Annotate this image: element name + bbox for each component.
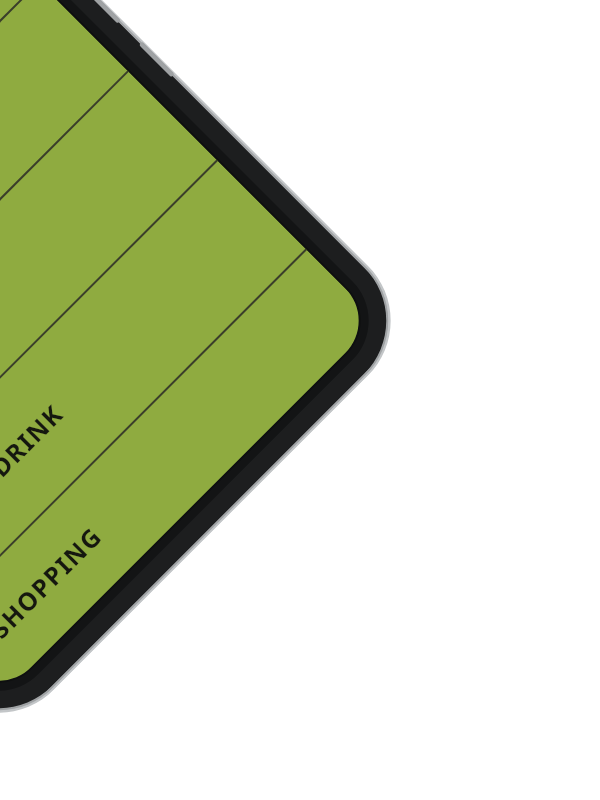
button[interactable]: FOOD & DRINK — [0, 161, 306, 628]
button[interactable]: Offers badge — [0, 0, 38, 360]
staticText: SHOPPING — [0, 519, 109, 645]
staticText: FOOD & DRINK — [0, 396, 70, 565]
button[interactable]: EVENTS & ACTIVITIES — [0, 0, 127, 449]
button[interactable]: WELLBEING — [0, 72, 216, 538]
button[interactable]: SHOPPING — [0, 250, 378, 700]
